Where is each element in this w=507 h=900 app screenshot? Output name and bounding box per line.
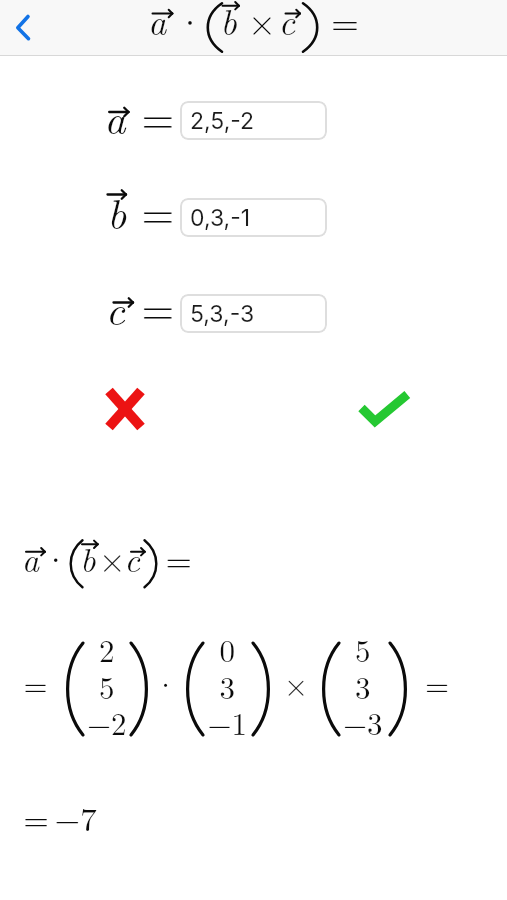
staticText: 0,3,-1 <box>190 204 251 232</box>
staticText: 5,3,-3 <box>190 300 255 328</box>
button[interactable] <box>356 388 412 430</box>
button[interactable]: 5,3,-3 <box>180 294 327 333</box>
button[interactable] <box>104 388 148 432</box>
button[interactable]: 0,3,-1 <box>180 198 327 237</box>
staticText: 2,5,-2 <box>190 107 255 135</box>
button[interactable] <box>11 12 35 44</box>
button[interactable]: 2,5,-2 <box>180 101 327 140</box>
